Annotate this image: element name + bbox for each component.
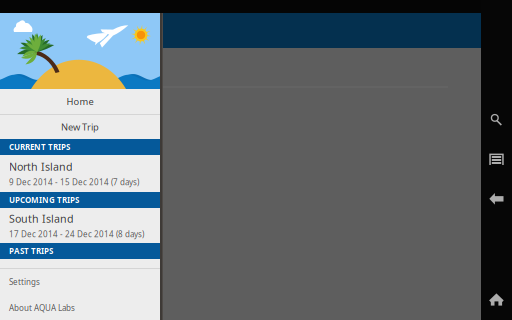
staticText: Home (66, 95, 93, 108)
staticText: Settings (9, 277, 40, 287)
button[interactable]: Home (0, 89, 160, 114)
button[interactable]: New Trip (0, 115, 160, 139)
button[interactable]: Search (481, 112, 512, 128)
staticText: 9 Dec 2014 - 15 Dec 2014 (7 days) (9, 177, 139, 187)
button[interactable]: About AQUA Labs (0, 295, 160, 320)
staticText: PAST TRIPS (9, 246, 53, 256)
button[interactable]: Recent apps (481, 152, 512, 168)
staticText: UPCOMING TRIPS (9, 195, 79, 205)
staticText: 17 Dec 2014 - 24 Dec 2014 (8 days) (9, 229, 144, 239)
staticText: New Trip (61, 121, 99, 133)
button[interactable]: Settings (0, 269, 160, 295)
button[interactable]: Back (481, 191, 512, 207)
staticText: North Island (9, 160, 73, 174)
button[interactable]: North Island (0, 155, 160, 192)
staticText: South Island (9, 212, 74, 226)
staticText: CURRENT TRIPS (9, 142, 70, 152)
button[interactable]: South Island (0, 208, 160, 243)
staticText: About AQUA Labs (9, 303, 75, 313)
button[interactable]: Home (481, 292, 512, 308)
